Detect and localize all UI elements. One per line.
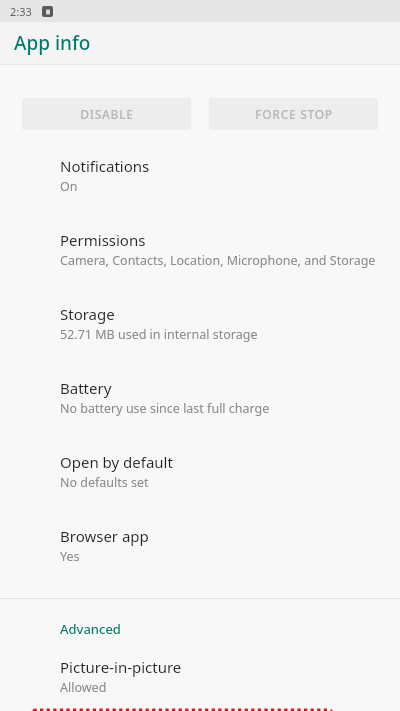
staticText: Storage [60, 304, 115, 324]
button[interactable]: Battery [0, 343, 400, 417]
staticText: Notifications [60, 156, 150, 176]
staticText: Browser app [60, 526, 149, 546]
staticText: FORCE STOP [255, 106, 333, 122]
staticText: No battery use since last full charge [60, 400, 270, 417]
button[interactable]: Storage [0, 269, 400, 343]
staticText: Advanced [60, 620, 121, 638]
staticText: Permissions [60, 230, 146, 250]
button[interactable]: Advanced [0, 599, 400, 640]
staticText: No defaults set [60, 474, 149, 491]
button[interactable]: FORCE STOP [209, 98, 378, 130]
staticText: DISABLE [80, 106, 134, 122]
staticText: 2:33 [10, 4, 32, 19]
button[interactable]: Browser app [0, 491, 400, 565]
staticText: Open by default [60, 452, 173, 472]
button[interactable]: Picture-in-picture [0, 640, 400, 696]
button[interactable]: Open by default [0, 417, 400, 491]
button[interactable]: Notifications [0, 130, 400, 195]
staticText: Yes [60, 548, 80, 565]
button[interactable]: DISABLE [22, 98, 191, 130]
button[interactable]: Permissions [0, 195, 400, 269]
staticText: Allowed [60, 679, 107, 696]
staticText: 52.71 MB used in internal storage [60, 326, 258, 343]
staticText: On [60, 178, 78, 195]
staticText: Picture-in-picture [60, 657, 182, 677]
staticText: App info [14, 30, 91, 56]
staticText: Camera, Contacts, Location, Microphone, … [60, 252, 376, 269]
staticText: Battery [60, 378, 112, 398]
